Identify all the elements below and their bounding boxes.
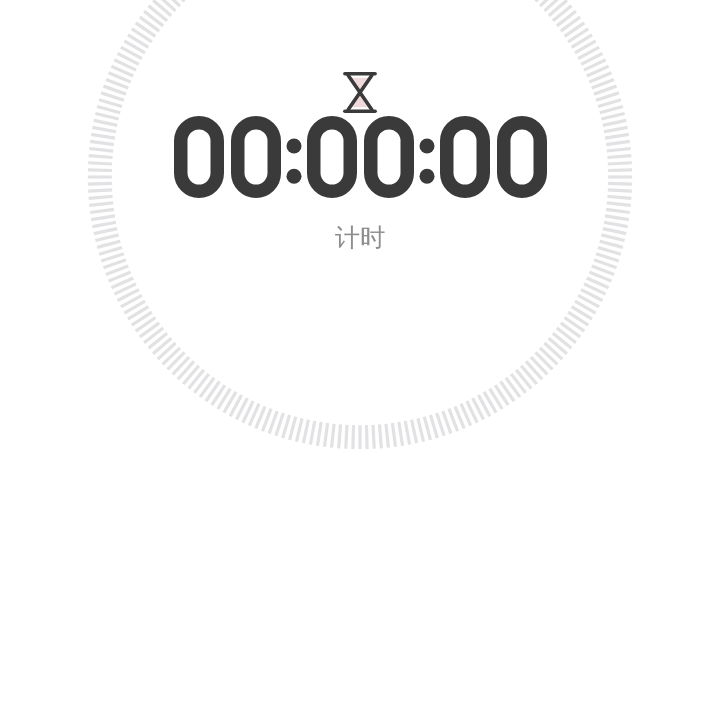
button[interactable]: Timer [336, 68, 384, 116]
button[interactable]: 计时 [335, 222, 385, 253]
button[interactable] [174, 116, 547, 198]
